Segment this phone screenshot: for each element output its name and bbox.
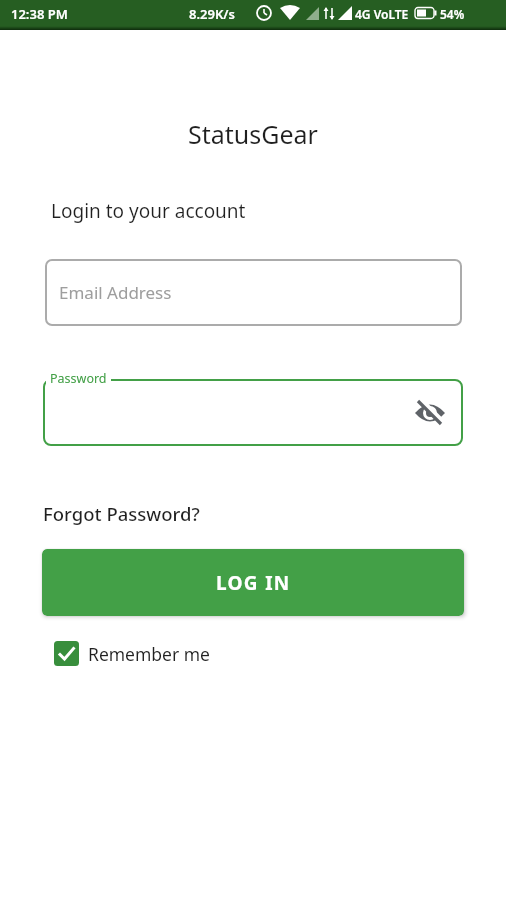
button[interactable]: LOG IN xyxy=(42,549,464,616)
button[interactable]: Forgot Password? xyxy=(43,501,200,526)
button[interactable]: Email Address xyxy=(45,259,462,326)
staticText: Password xyxy=(50,370,107,387)
staticText: 4G VoLTE xyxy=(355,6,409,22)
staticText: Login to your account xyxy=(51,198,246,224)
button[interactable] xyxy=(415,398,445,428)
staticText: LOG IN xyxy=(216,570,291,596)
staticText: 54% xyxy=(440,6,465,22)
staticText: StatusGear xyxy=(0,117,506,151)
staticText: Email Address xyxy=(59,281,172,304)
button[interactable] xyxy=(43,379,463,446)
staticText: 8.29K/s xyxy=(189,5,235,23)
button[interactable]: Remember me xyxy=(54,641,210,666)
staticText: Remember me xyxy=(88,642,210,666)
staticText: 12:38 PM xyxy=(11,5,68,23)
